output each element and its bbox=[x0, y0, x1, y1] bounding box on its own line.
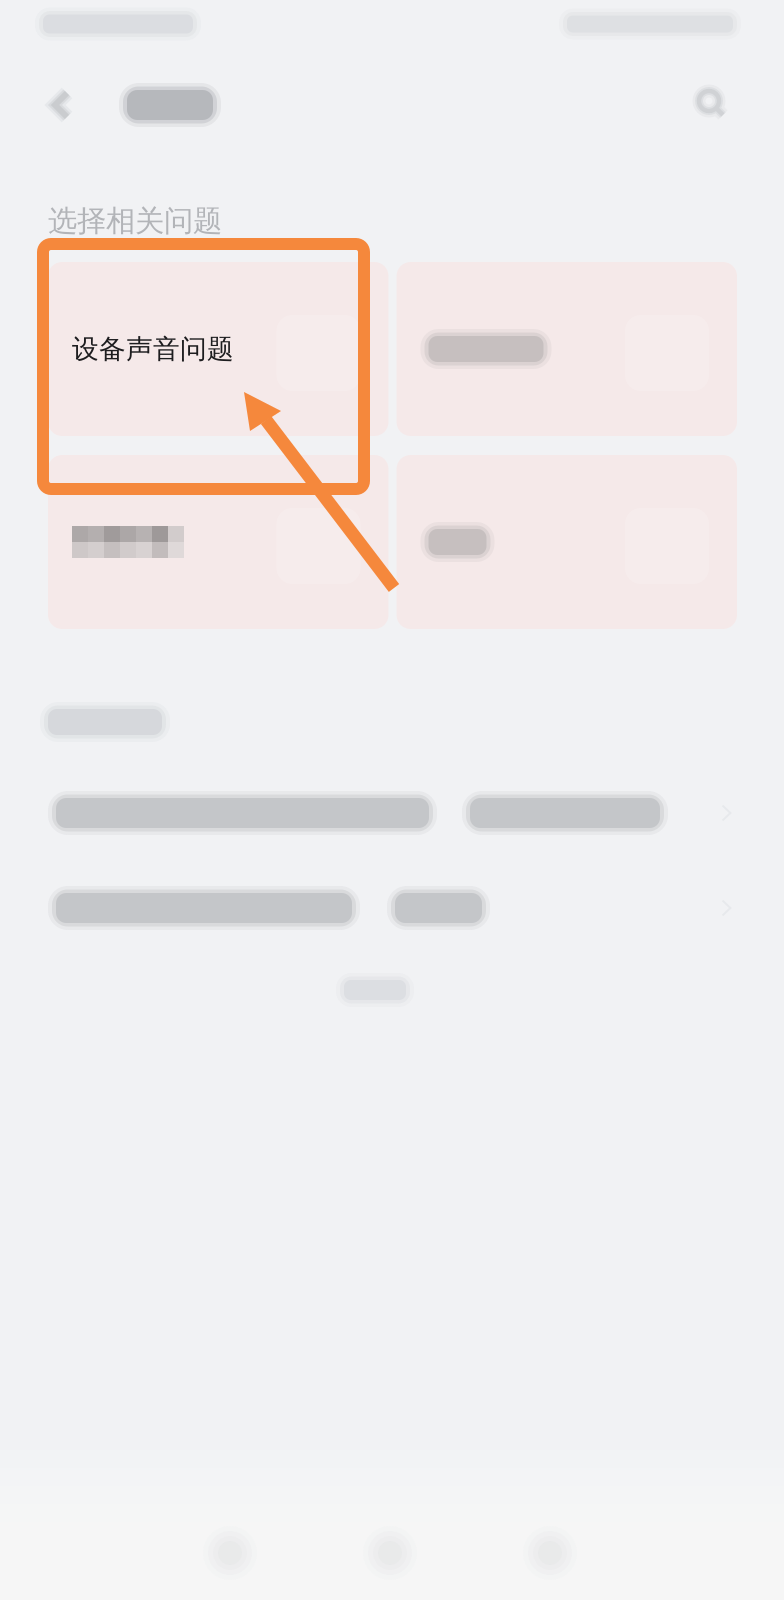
staticText: 选择相关问题 bbox=[48, 203, 222, 239]
button[interactable] bbox=[396, 262, 737, 436]
button[interactable] bbox=[48, 455, 388, 629]
button[interactable]: 设备声音问题 bbox=[48, 262, 388, 436]
button[interactable]: Search bbox=[680, 73, 744, 137]
staticText: 设备声音问题 bbox=[72, 333, 234, 365]
button[interactable] bbox=[48, 766, 736, 860]
button[interactable]: Back bbox=[34, 74, 98, 138]
button[interactable] bbox=[396, 455, 737, 629]
button[interactable] bbox=[48, 861, 736, 955]
button[interactable] bbox=[300, 962, 450, 1018]
